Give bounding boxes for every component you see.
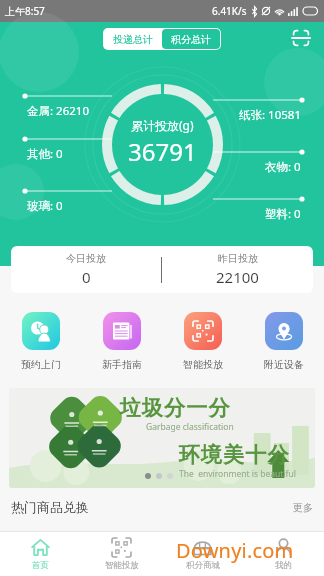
staticText: 金属: 26210 bbox=[27, 103, 89, 119]
staticText: Garbage classification bbox=[146, 421, 234, 433]
staticText: Downyi.com bbox=[176, 537, 294, 564]
staticText: 36791 bbox=[128, 135, 197, 168]
button[interactable]: 预约上门 bbox=[0, 312, 81, 376]
staticText: 昨日投放 bbox=[218, 252, 258, 265]
button[interactable]: 附近设备 bbox=[243, 312, 324, 376]
button[interactable]: 积分总计 bbox=[162, 29, 220, 49]
staticText: 环境美十分 bbox=[178, 442, 289, 468]
staticText: 首页 bbox=[32, 560, 49, 571]
staticText: 热门商品兑换 bbox=[11, 499, 89, 515]
staticText: 上午8:57 bbox=[5, 4, 45, 18]
staticText: 累计投放(g) bbox=[131, 117, 194, 133]
staticText: 塑料: 0 bbox=[265, 206, 301, 222]
staticText: 22100 bbox=[216, 267, 259, 287]
staticText: 纸张: 10581 bbox=[239, 107, 301, 123]
staticText: 今日投放 bbox=[66, 252, 106, 265]
staticText: 智能投放 bbox=[183, 358, 223, 371]
button[interactable]: 新手指南 bbox=[81, 312, 162, 376]
staticText: 预约上门 bbox=[21, 358, 61, 371]
button[interactable]: 智能投放 bbox=[81, 532, 162, 576]
button[interactable]: 积分商城 bbox=[162, 532, 243, 576]
staticText: The environment is beautiful bbox=[179, 468, 296, 480]
staticText: 0 bbox=[82, 267, 91, 287]
staticText: 新手指南 bbox=[102, 358, 142, 371]
staticText: 更多 bbox=[293, 501, 313, 514]
staticText: 附近设备 bbox=[264, 358, 304, 371]
staticText: 智能投放 bbox=[105, 560, 139, 571]
button[interactable]: 更多 bbox=[293, 501, 313, 514]
staticText: 衣物: 0 bbox=[265, 159, 301, 175]
staticText: 我的 bbox=[275, 560, 292, 571]
staticText: 积分总计 bbox=[171, 33, 211, 46]
staticText: 垃圾分一分 bbox=[119, 395, 230, 421]
button[interactable]: 垃圾分一分 bbox=[9, 388, 315, 488]
button[interactable]: 投递总计 bbox=[104, 29, 162, 49]
button[interactable]: 智能投放 bbox=[162, 312, 243, 376]
button[interactable]: 首页 bbox=[0, 532, 81, 576]
staticText: 积分商城 bbox=[186, 560, 220, 571]
button[interactable]: 我的 bbox=[243, 532, 324, 576]
staticText: 其他: 0 bbox=[27, 146, 63, 162]
staticText: 投递总计 bbox=[113, 33, 153, 46]
button[interactable]: 扫一扫 bbox=[289, 26, 313, 50]
staticText: 玻璃: 0 bbox=[27, 198, 63, 214]
button[interactable]: 今日投放 bbox=[11, 246, 313, 293]
staticText: 6.41K/s bbox=[212, 4, 247, 18]
